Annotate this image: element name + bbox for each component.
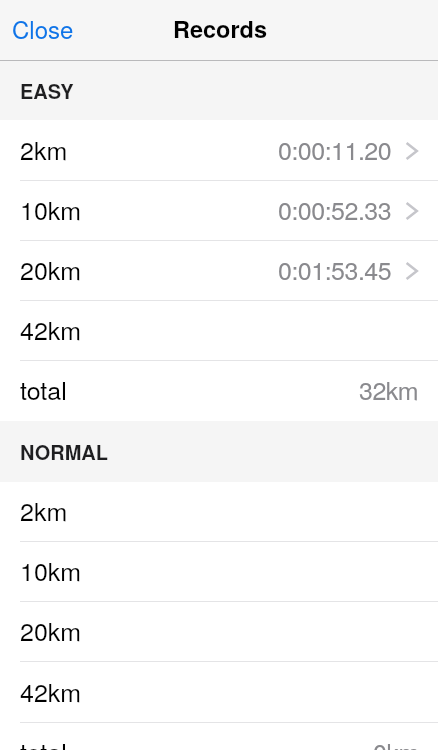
staticText: Close bbox=[12, 11, 74, 45]
staticText: NORMAL bbox=[20, 437, 108, 466]
staticText: EASY bbox=[20, 76, 74, 105]
button[interactable]: Close bbox=[0, 3, 86, 53]
staticText: 32km bbox=[359, 371, 419, 407]
button[interactable]: 20km bbox=[0, 602, 438, 662]
staticText: 0:00:52.33 bbox=[278, 191, 392, 227]
button[interactable]: 10km bbox=[0, 181, 438, 241]
button[interactable]: 42km bbox=[0, 662, 438, 723]
staticText: 0:00:11.20 bbox=[278, 131, 392, 167]
staticText: 20km bbox=[20, 612, 82, 648]
staticText: 42km bbox=[20, 673, 82, 709]
button[interactable]: total bbox=[0, 361, 438, 421]
staticText: total bbox=[20, 371, 67, 407]
staticText: 2km bbox=[20, 492, 68, 528]
staticText: Records bbox=[173, 12, 268, 46]
staticText: 10km bbox=[20, 552, 82, 588]
button[interactable]: 42km bbox=[0, 301, 438, 361]
staticText: 2km bbox=[20, 131, 68, 167]
staticText: 0km bbox=[373, 733, 419, 750]
staticText: 20km bbox=[20, 251, 82, 287]
button[interactable]: total bbox=[0, 723, 438, 750]
staticText: 10km bbox=[20, 191, 82, 227]
staticText: 42km bbox=[20, 311, 82, 347]
button[interactable]: 10km bbox=[0, 542, 438, 602]
button[interactable]: 20km bbox=[0, 241, 438, 301]
staticText: total bbox=[20, 733, 67, 750]
button[interactable]: 2km bbox=[0, 482, 438, 542]
button[interactable]: 2km bbox=[0, 120, 438, 181]
staticText: 0:01:53.45 bbox=[278, 251, 392, 287]
